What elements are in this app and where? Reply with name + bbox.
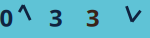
staticText: 0 bbox=[0, 2, 13, 33]
staticText: 3 bbox=[86, 2, 100, 33]
staticText: 3 bbox=[49, 2, 63, 33]
